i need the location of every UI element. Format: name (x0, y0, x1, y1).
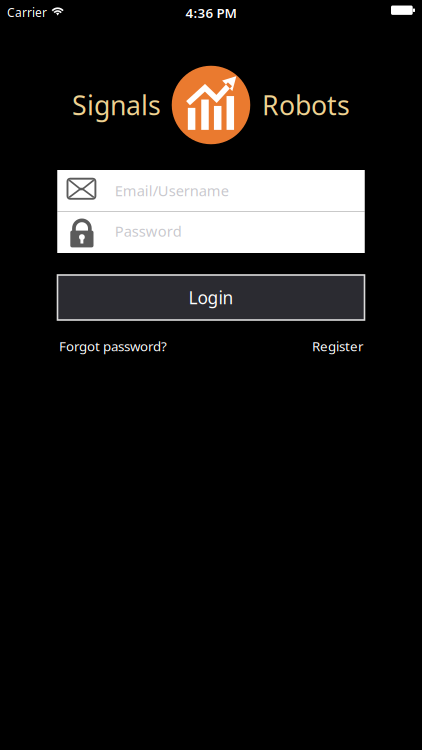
staticText: Password (115, 221, 182, 241)
button[interactable]: Register (284, 338, 364, 354)
staticText: 4:36 PM (185, 4, 236, 22)
staticText: Email/Username (115, 181, 229, 200)
staticText: Robots (262, 87, 350, 123)
button[interactable]: Forgot password? (59, 338, 179, 354)
staticText: Carrier (7, 4, 47, 20)
staticText: Signals (72, 87, 161, 123)
button[interactable]: Login (57, 275, 364, 320)
button[interactable]: Email/Username (57, 170, 364, 211)
staticText: Register (312, 337, 364, 355)
staticText: Login (188, 286, 233, 309)
button[interactable]: Password (57, 212, 364, 253)
staticText: Forgot password? (59, 337, 167, 355)
